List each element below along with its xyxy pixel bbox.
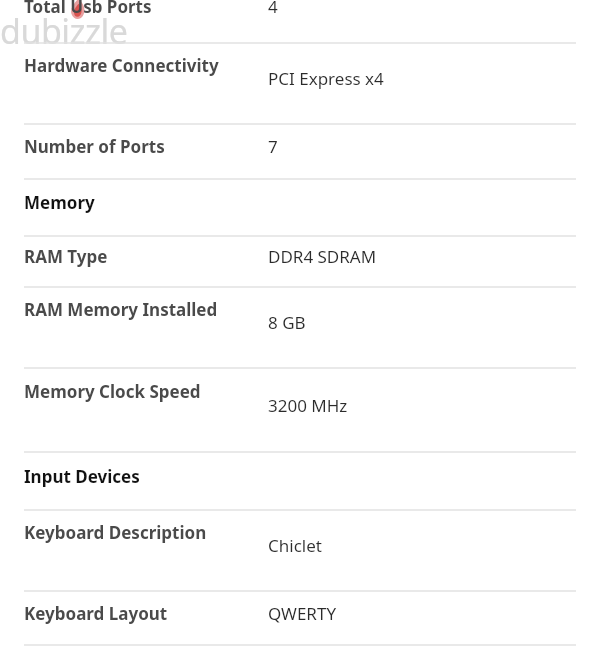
button[interactable]	[0, 368, 600, 452]
staticText: Memory	[24, 191, 324, 214]
staticText: 8 GB	[268, 311, 568, 334]
staticText: Memory Clock Speed	[24, 380, 239, 403]
staticText: QWERTY	[268, 602, 568, 625]
button[interactable]	[0, 591, 600, 645]
button[interactable]	[0, 452, 600, 510]
button[interactable]	[0, 43, 600, 124]
staticText: Chiclet	[268, 534, 568, 557]
button[interactable]	[0, 124, 600, 179]
staticText: PCI Express x4	[268, 67, 568, 90]
staticText: 7	[268, 135, 568, 158]
button[interactable]	[0, 510, 600, 591]
button[interactable]	[0, 287, 600, 368]
staticText: Keyboard Description	[24, 521, 239, 544]
staticText: Input Devices	[24, 465, 324, 488]
staticText: DDR4 SDRAM	[268, 245, 568, 268]
staticText: dubizzle	[0, 8, 128, 54]
staticText: 3200 MHz	[268, 394, 568, 417]
staticText: Total Usb Ports	[24, 0, 239, 18]
button[interactable]	[0, 236, 600, 287]
button[interactable]	[0, 179, 600, 236]
staticText: 4	[268, 0, 568, 18]
button[interactable]	[0, 0, 600, 43]
staticText: RAM Memory Installed	[24, 298, 239, 321]
staticText: Keyboard Layout	[24, 602, 239, 625]
staticText: RAM Type	[24, 245, 239, 268]
staticText: Hardware Connectivity	[24, 54, 239, 77]
staticText: Number of Ports	[24, 135, 239, 158]
